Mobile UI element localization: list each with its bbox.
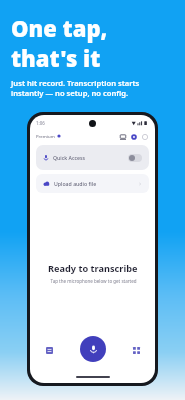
button[interactable]: Desktop mode [118, 132, 127, 141]
staticText: that's it [11, 43, 101, 73]
staticText: Upload audio file [54, 180, 97, 187]
staticText: Just hit record. Transcription starts [11, 78, 140, 88]
button[interactable]: Apps [129, 343, 143, 357]
staticText: Quick Access [53, 154, 86, 161]
button[interactable]: Quick Access toggle [128, 154, 142, 162]
staticText: instantly — no setup, no config. [11, 88, 129, 98]
staticText: One tap, [11, 13, 108, 43]
staticText: Premium [36, 133, 55, 139]
staticText: Ready to transcribe [48, 262, 138, 275]
button[interactable]: Settings [129, 132, 138, 141]
staticText: 1:06 [36, 120, 45, 126]
button[interactable]: Help [140, 132, 149, 141]
button[interactable]: Transcripts [42, 343, 56, 357]
button[interactable]: Upload audio file [36, 174, 149, 193]
button[interactable]: Record [80, 336, 106, 362]
staticText: Tap the microphone below to get started [50, 278, 137, 284]
button[interactable]: Quick Access [36, 145, 149, 170]
